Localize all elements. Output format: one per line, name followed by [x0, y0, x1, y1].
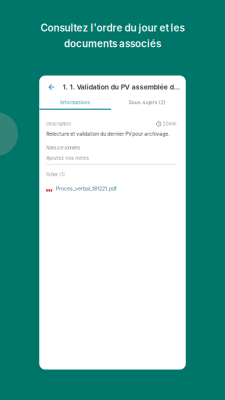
staticText: 1. 1. Validation du PV assemblée d…	[63, 83, 180, 91]
staticText: Ajoutez vos notes	[46, 155, 89, 161]
button[interactable]: Sous-sujets (2)	[111, 100, 183, 110]
button[interactable]: Retour	[41, 83, 63, 92]
staticText: Notes personnelles	[46, 145, 80, 150]
staticText: documents associés	[64, 38, 161, 50]
staticText: 20min	[163, 121, 177, 127]
staticText: Description	[46, 121, 71, 127]
staticText: Proces_verbal_181221.pdf	[56, 185, 117, 192]
staticText: Sous-sujets (2)	[129, 100, 166, 105]
staticText: Fichier (1)	[46, 172, 65, 177]
button[interactable]: Proces_verbal_181221.pdf	[46, 186, 177, 192]
staticText: Informations	[60, 100, 90, 105]
button[interactable]: Informations	[39, 100, 111, 110]
staticText: Consultez l'ordre du jour et les	[40, 22, 184, 34]
staticText: Relecture et validation du dernier PV po…	[46, 131, 169, 137]
